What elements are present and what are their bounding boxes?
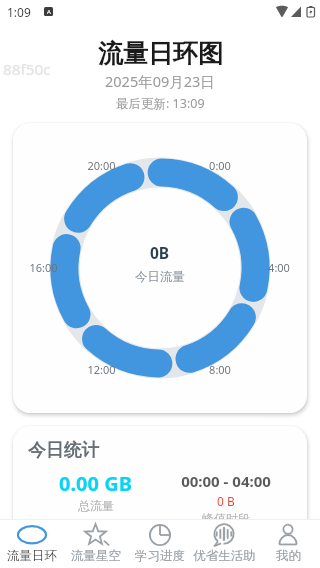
- staticText: 学习进度: [135, 548, 185, 564]
- staticText: 优省生活助: [193, 548, 256, 564]
- staticText: 最后更新: 13:09: [116, 95, 205, 112]
- button[interactable]: 流量星空: [64, 519, 128, 568]
- staticText: A: [47, 8, 51, 16]
- staticText: 今日流量: [135, 269, 185, 285]
- button[interactable]: 流量日环: [0, 519, 64, 568]
- staticText: 8:00: [209, 362, 231, 377]
- staticText: 16:00: [29, 260, 58, 275]
- staticText: 0:00: [209, 158, 231, 173]
- staticText: 12:00: [87, 362, 116, 377]
- staticText: 流量星空: [71, 548, 121, 564]
- staticText: 20:00: [87, 158, 116, 173]
- button[interactable]: 优省生活助: [192, 519, 256, 568]
- staticText: 1:09: [7, 4, 31, 20]
- staticText: 88f50c: [3, 59, 51, 80]
- staticText: 总流量: [78, 498, 114, 513]
- staticText: 0.00 GB: [59, 470, 132, 497]
- staticText: 流量日环图: [98, 38, 223, 69]
- button[interactable]: 学习进度: [128, 519, 192, 568]
- button[interactable]: 我的: [256, 519, 320, 568]
- staticText: 00:00 - 04:00: [181, 471, 271, 491]
- staticText: 2025年09月23日: [105, 71, 215, 91]
- staticText: 0B: [150, 242, 170, 263]
- staticText: 峰值时段: [202, 511, 250, 526]
- staticText: 流量日环: [7, 548, 57, 564]
- staticText: 0 B: [217, 493, 235, 509]
- staticText: 今日统计: [28, 439, 100, 461]
- staticText: 我的: [276, 548, 301, 564]
- staticText: 4:00: [268, 260, 290, 275]
